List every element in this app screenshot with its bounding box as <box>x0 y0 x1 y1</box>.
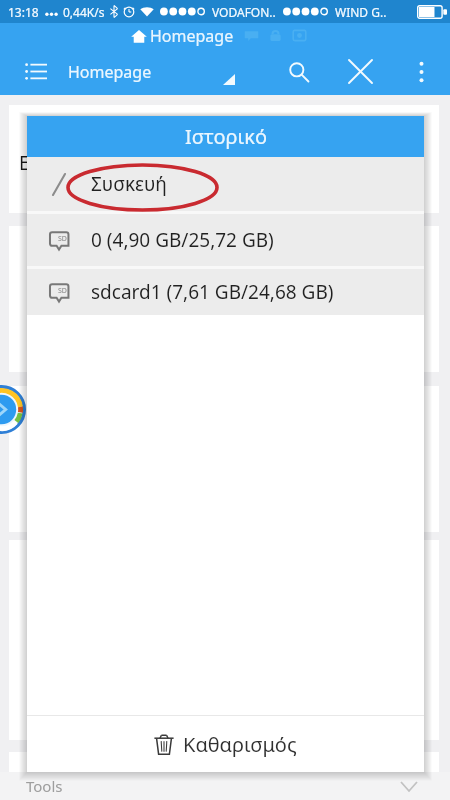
staticText: SD <box>58 234 67 244</box>
staticText: 0 (4,90 GB/25,72 GB) <box>91 227 274 253</box>
staticText: SD <box>58 286 67 296</box>
staticText: Homepage <box>150 25 234 47</box>
staticText: sdcard1 (7,61 GB/24,68 GB) <box>91 279 334 305</box>
button[interactable]: Search <box>277 48 321 95</box>
button[interactable]: Καθαρισμός <box>27 716 424 772</box>
staticText: Καθαρισμός <box>183 731 297 758</box>
button[interactable]: Homepage <box>131 25 234 47</box>
staticText: VODAFON.. <box>212 4 276 20</box>
button[interactable]: Menu <box>12 48 60 95</box>
button[interactable]: Chat tab <box>244 28 259 43</box>
staticText: 0,44K/s <box>63 4 105 20</box>
button[interactable]: Συσκευή <box>27 157 424 211</box>
button[interactable]: Expand tools <box>398 772 420 800</box>
staticText: Εσωτερική <box>19 150 114 176</box>
staticText: Συσκευή <box>91 171 167 197</box>
staticText: Tools <box>26 776 63 796</box>
button[interactable]: SD <box>27 214 424 266</box>
button[interactable]: SD <box>27 269 424 315</box>
staticText: Homepage <box>68 61 152 83</box>
staticText: Ιστορικό <box>185 123 267 150</box>
button[interactable]: Gallery tab <box>292 28 307 43</box>
button[interactable]: More options <box>401 48 441 95</box>
button[interactable]: Close <box>338 48 382 95</box>
staticText: 13:18 <box>8 4 39 20</box>
staticText: WIND G.. <box>335 4 387 20</box>
button[interactable]: Secure tab <box>268 28 283 43</box>
